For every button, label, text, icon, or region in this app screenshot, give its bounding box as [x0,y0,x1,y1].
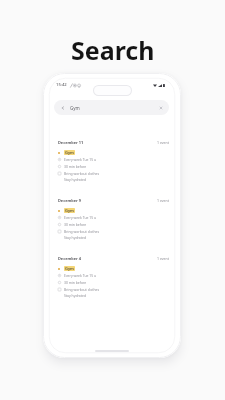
staticText: Stay hydrated [64,235,86,240]
staticText: 1 event [157,256,169,261]
staticText: 30 min before [64,280,87,285]
other: Back [61,106,65,110]
staticText: 1 event [157,140,169,145]
staticText: Gym [70,105,80,111]
staticText: Every week Tue 15 u [64,273,97,278]
staticText: 15:42 [56,82,67,88]
other: Clear [159,106,163,110]
staticText: Every week Tue 15 u [64,157,97,162]
staticText: Gym [65,150,74,155]
staticText: 1 event [157,198,169,203]
staticText: December 4 [58,256,82,261]
button[interactable]: Gym [58,208,169,213]
staticText: 30 min before [64,164,87,169]
staticText: Search [71,33,155,67]
staticText: Bring workout clothes [64,171,100,176]
staticText: Bring workout clothes [64,287,100,292]
staticText: Every week Tue 15 u [64,215,97,220]
staticText: Stay hydrated [64,293,86,298]
staticText: December 9 [58,198,82,203]
staticText: Gym [65,208,74,213]
staticText: 30 min before [64,222,87,227]
staticText: Gym [65,266,74,271]
staticText: December 11 [58,140,84,145]
button[interactable]: Back [54,100,169,115]
staticText: Stay hydrated [64,177,86,182]
button[interactable]: Gym [58,266,169,271]
button[interactable]: Gym [58,150,169,155]
staticText: Bring workout clothes [64,229,100,234]
